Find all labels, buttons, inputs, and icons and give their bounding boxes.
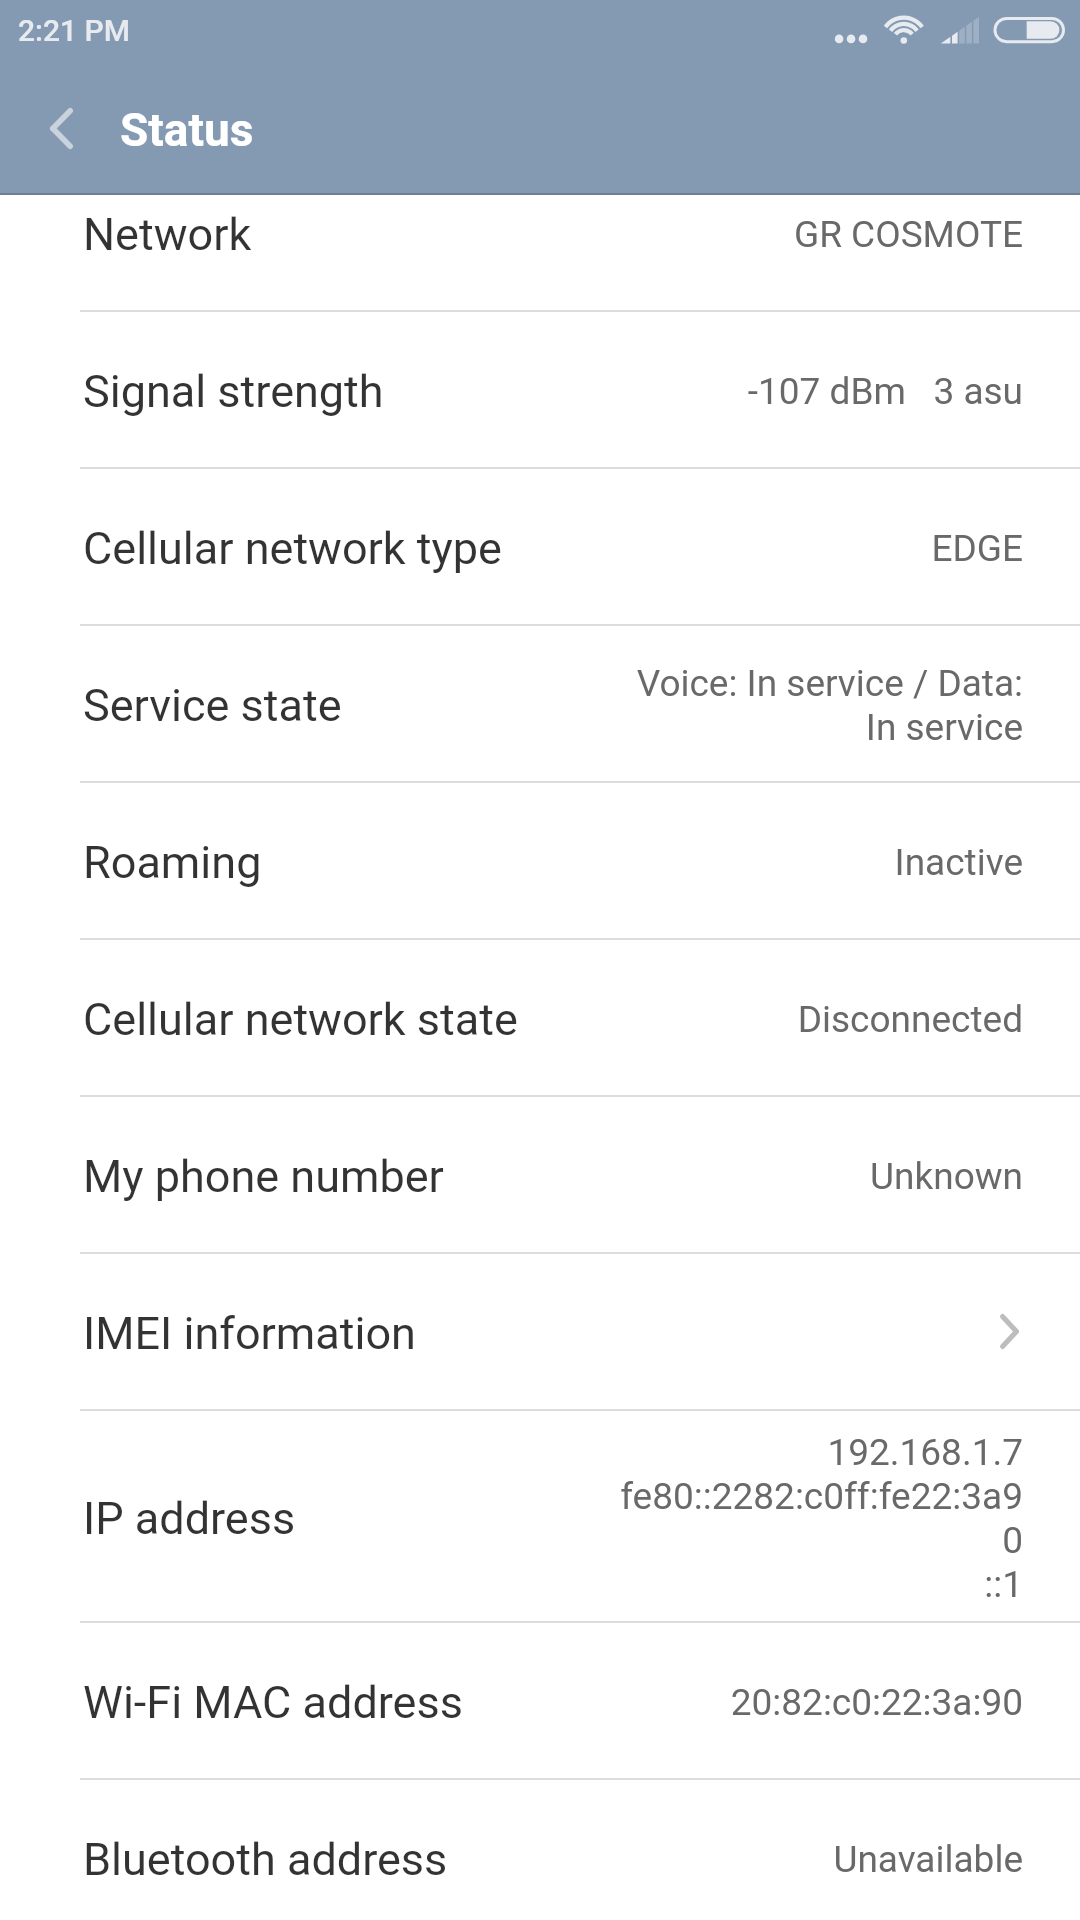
staticText: -107 dBm 3 asu	[747, 370, 1023, 413]
staticText: Roaming	[83, 836, 262, 889]
staticText: My phone number	[83, 1150, 444, 1203]
staticText: IMEI information	[83, 1307, 416, 1360]
staticText: GR COSMOTE	[793, 213, 1023, 256]
button[interactable]: IP address	[0, 1411, 1080, 1623]
staticText: Unavailable	[833, 1838, 1023, 1881]
button[interactable]: IMEI information	[0, 1254, 1080, 1411]
staticText: Signal strength	[83, 365, 384, 418]
button[interactable]: My phone number	[0, 1097, 1080, 1254]
staticText: Status	[120, 103, 254, 157]
button[interactable]: Cellular network state	[0, 940, 1080, 1097]
staticText: Cellular network state	[83, 993, 518, 1046]
staticText: Service state	[83, 679, 342, 732]
staticText: 192.168.1.7 fe80::2282:c0ff:fe22:3a90 ::…	[611, 1431, 1023, 1606]
staticText: Network	[83, 208, 252, 261]
button[interactable]: Cellular network type	[0, 469, 1080, 626]
button[interactable]: Roaming	[0, 783, 1080, 940]
button[interactable]: Signal strength	[0, 312, 1080, 469]
staticText: Unknown	[870, 1155, 1023, 1198]
button[interactable]: Network	[0, 155, 1080, 312]
staticText: Voice: In service / Data: In service	[611, 662, 1023, 749]
staticText: 20:82:c0:22:3a:90	[730, 1681, 1023, 1724]
staticText: Inactive	[894, 841, 1023, 884]
staticText: Wi-Fi MAC address	[83, 1676, 463, 1729]
button[interactable]: Wi-Fi MAC address	[0, 1623, 1080, 1780]
staticText: 2:21 PM	[18, 13, 131, 48]
staticText: EDGE	[931, 527, 1023, 570]
button[interactable]: Service state	[0, 626, 1080, 783]
staticText: Cellular network type	[83, 522, 502, 575]
staticText: Disconnected	[797, 998, 1023, 1041]
staticText: Bluetooth address	[83, 1833, 448, 1886]
staticText: IP address	[83, 1492, 296, 1545]
button[interactable]: Back	[22, 89, 100, 167]
button[interactable]: Bluetooth address	[0, 1780, 1080, 1920]
